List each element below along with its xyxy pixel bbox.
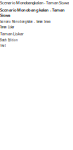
- staticText: Batch Edition: [0, 38, 18, 42]
- staticText: Scenario Monobangkalan - Taman Siswa: [0, 7, 65, 18]
- staticText: Scenario Monobangkalan - Taman Siswa: [0, 0, 69, 5]
- staticText: Taman Liskar: [0, 31, 24, 36]
- staticText: Taman Liskar: [0, 25, 14, 29]
- staticText: Scenario Monobangkalan - Taman Siswa: [0, 20, 50, 23]
- staticText: Tiket: [0, 44, 6, 47]
